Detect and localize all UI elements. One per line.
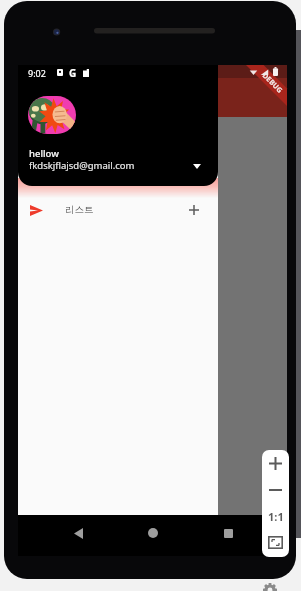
button[interactable]: Home bbox=[138, 518, 168, 548]
staticText: 리스트 bbox=[65, 204, 94, 216]
button[interactable]: Zoom in bbox=[262, 450, 289, 477]
staticText: fkdskjflajsd@gmail.com bbox=[29, 159, 135, 172]
button[interactable]: Fit to screen bbox=[262, 529, 289, 556]
button[interactable]: Back bbox=[63, 518, 93, 548]
button[interactable]: 1:1 bbox=[262, 503, 289, 529]
staticText: DEBUG bbox=[260, 71, 285, 96]
button[interactable]: 리스트 bbox=[18, 195, 218, 225]
button[interactable]: 9:02 bbox=[18, 65, 218, 186]
staticText: 1:1 bbox=[268, 509, 284, 524]
button[interactable]: Add bbox=[181, 197, 207, 223]
staticText: G bbox=[69, 66, 77, 79]
button[interactable]: Profile picture bbox=[28, 96, 76, 134]
staticText: 9:02 bbox=[28, 67, 46, 79]
button[interactable]: Zoom out bbox=[262, 477, 289, 503]
staticText: hellow bbox=[29, 147, 59, 160]
button[interactable]: Show accounts bbox=[188, 157, 206, 175]
button[interactable]: Settings bbox=[263, 583, 277, 591]
button[interactable]: Recent apps bbox=[213, 518, 243, 548]
